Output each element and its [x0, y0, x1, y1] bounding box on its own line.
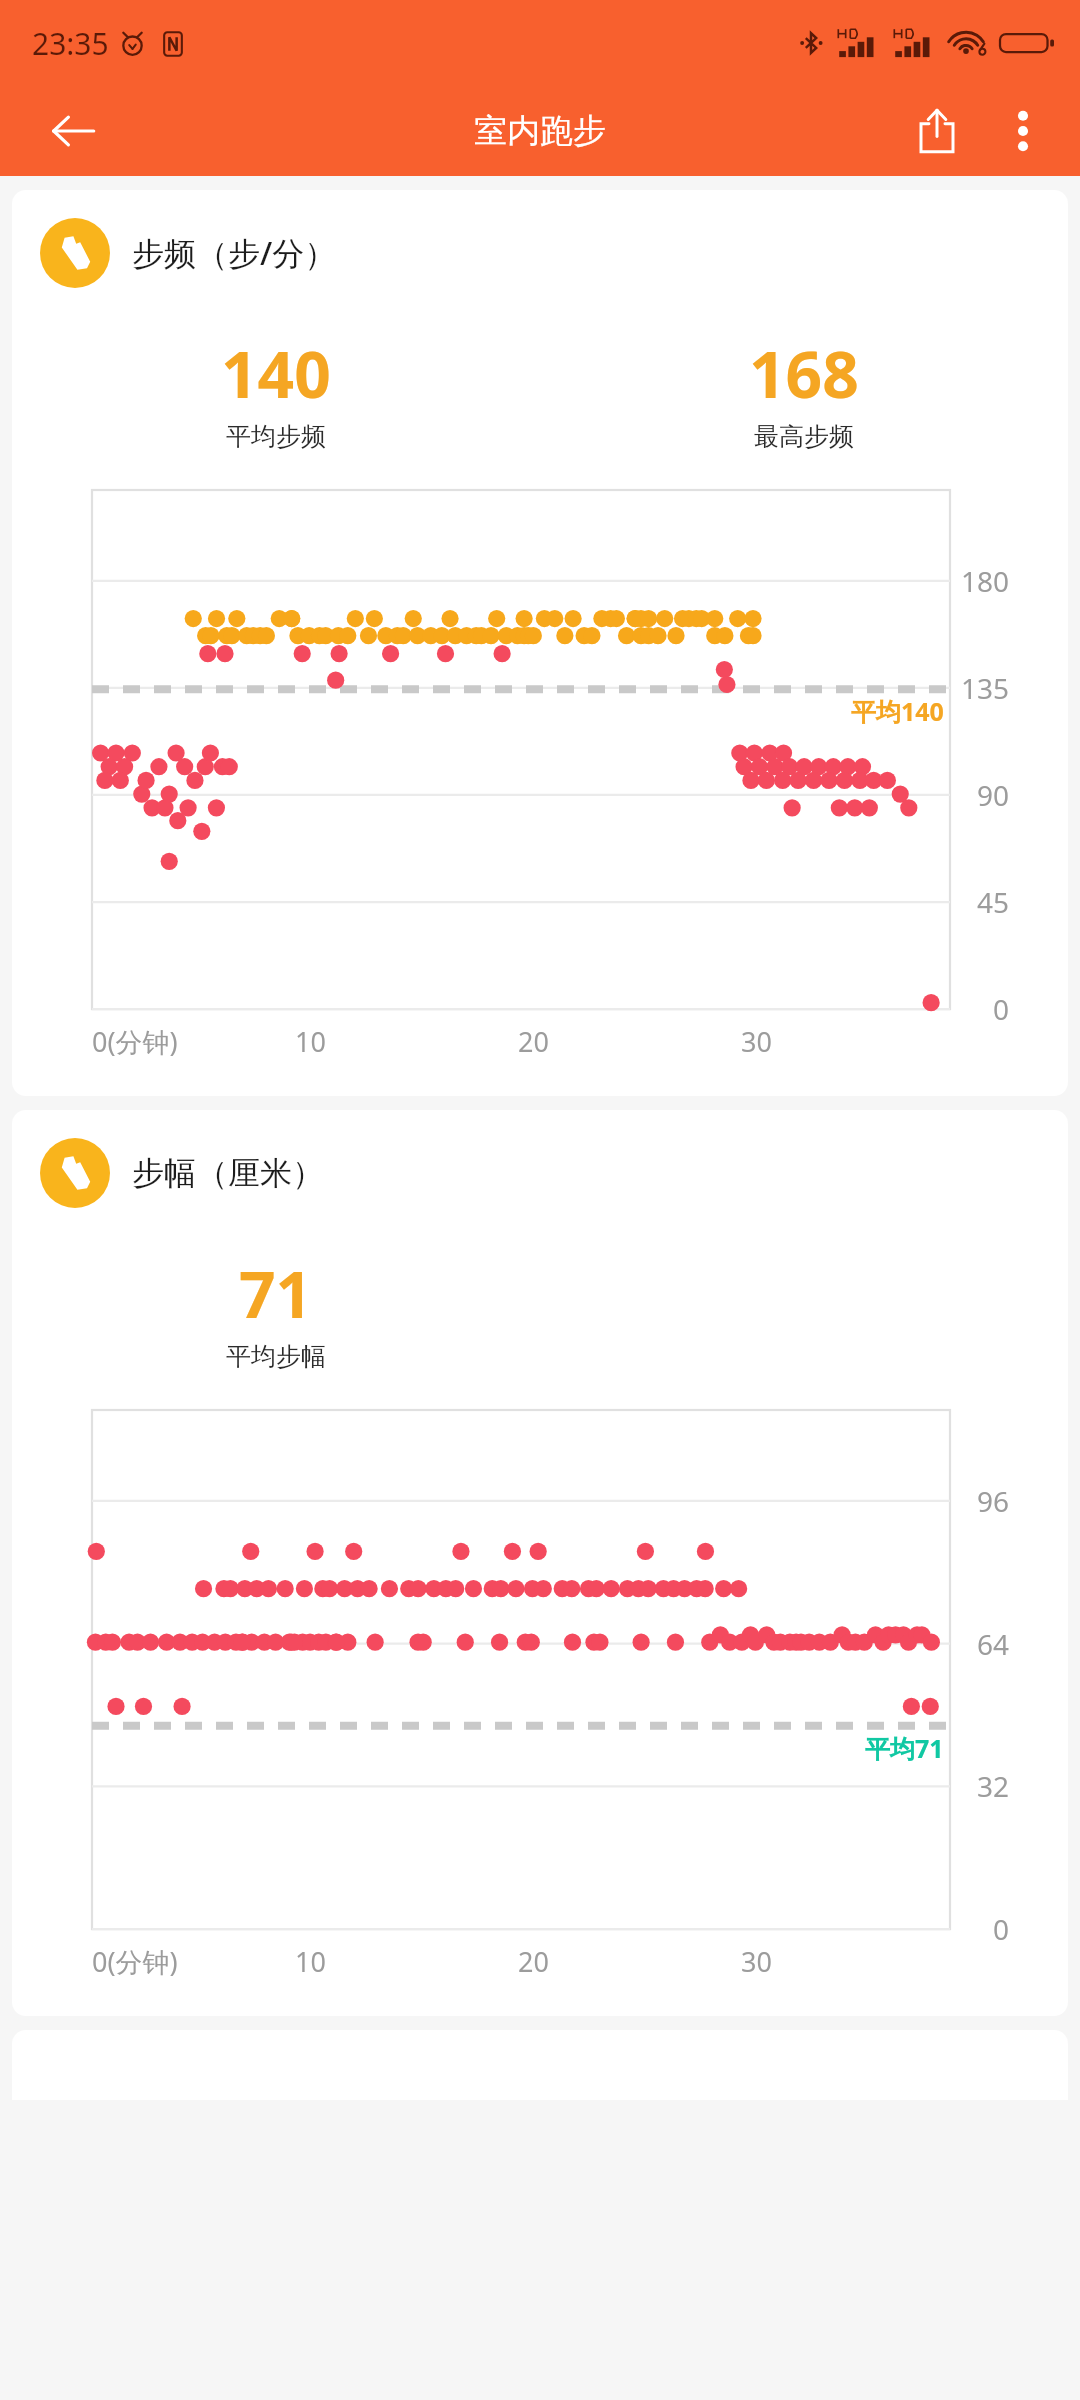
staticText: 10	[295, 1023, 326, 1060]
button[interactable]: 步幅（厘米）	[12, 1110, 1068, 2016]
staticText: 180	[961, 562, 1010, 600]
staticText: 90	[977, 776, 1010, 814]
button[interactable]: 步频（步/分）	[12, 190, 1068, 1096]
staticText: 20	[518, 1023, 549, 1060]
staticText: 135	[961, 669, 1010, 707]
staticText: 96	[977, 1482, 1010, 1520]
staticText: 步幅（厘米）	[132, 1153, 324, 1193]
staticText: 30	[741, 1023, 772, 1060]
staticText: 0	[993, 990, 1010, 1028]
staticText: 32	[977, 1767, 1010, 1805]
staticText: 0(分钟)	[92, 1943, 178, 1980]
staticText: 平均步幅	[226, 1341, 326, 1372]
staticText: 168	[749, 330, 859, 417]
staticText: 步频（步/分）	[132, 231, 337, 275]
button[interactable]: Back	[40, 98, 106, 164]
button[interactable]: Share	[900, 94, 974, 168]
staticText: 室内跑步	[474, 110, 606, 152]
staticText: 30	[741, 1943, 772, 1980]
staticText: 71	[239, 1250, 313, 1337]
staticText: 45	[977, 883, 1010, 921]
staticText: 140	[221, 330, 331, 417]
staticText: 平均140	[851, 694, 944, 728]
staticText: 64	[977, 1625, 1010, 1663]
staticText: 20	[518, 1943, 549, 1980]
staticText: 23:35	[32, 23, 109, 64]
staticText: 平均71	[865, 1731, 944, 1765]
staticText: 0	[993, 1910, 1010, 1948]
button[interactable]: More options	[990, 98, 1056, 164]
staticText: 10	[295, 1943, 326, 1980]
staticText: 0(分钟)	[92, 1023, 178, 1060]
staticText: 平均步频	[226, 421, 326, 452]
staticText: 最高步频	[754, 421, 854, 452]
